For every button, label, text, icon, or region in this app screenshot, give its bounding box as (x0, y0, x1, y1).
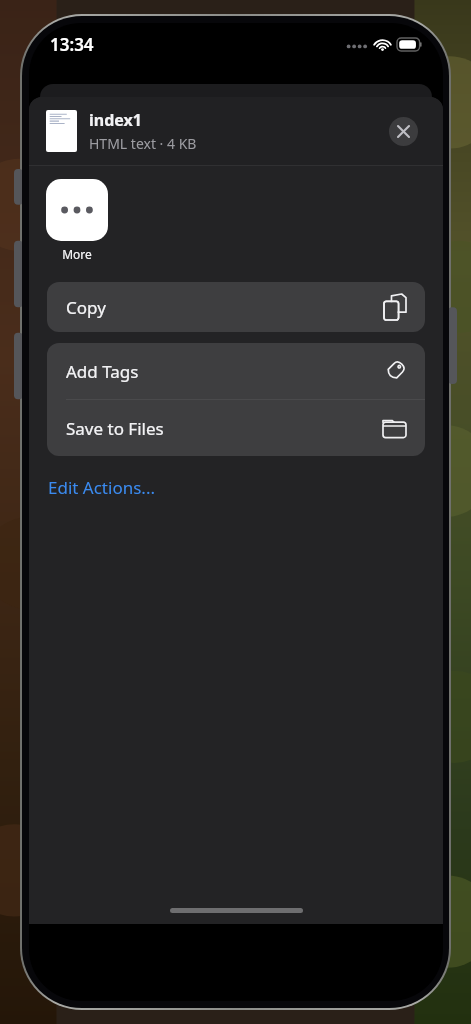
button[interactable]: Edit Actions... (47, 469, 425, 505)
button[interactable]: Copy (47, 282, 425, 332)
staticText: index1 (89, 109, 142, 131)
staticText: Edit Actions... (48, 476, 155, 499)
button[interactable]: More (46, 179, 108, 262)
button[interactable]: Save to Files (47, 400, 425, 456)
staticText: More (62, 246, 92, 262)
button[interactable]: Add Tags (47, 343, 425, 399)
staticText: Save to Files (66, 417, 164, 440)
staticText: HTML text · 4 KB (89, 134, 197, 153)
staticText: Add Tags (66, 360, 139, 383)
staticText: 13:34 (50, 33, 94, 56)
button[interactable]: Close (389, 117, 418, 146)
staticText: Copy (66, 296, 106, 319)
